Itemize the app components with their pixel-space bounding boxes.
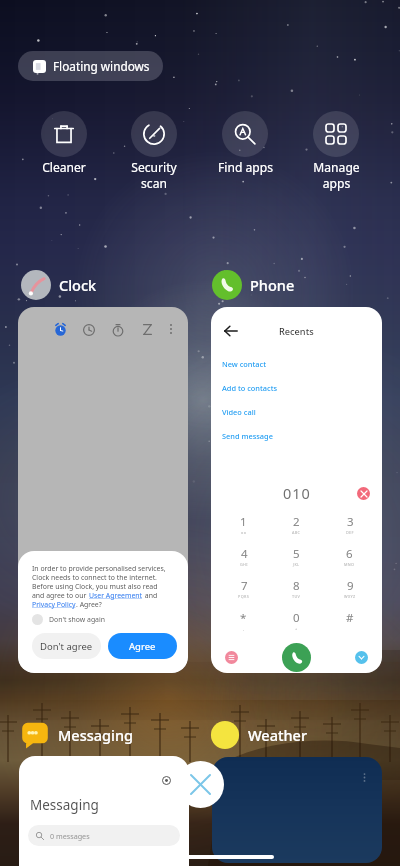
staticText: Clock	[59, 275, 97, 295]
button[interactable]: Agree	[108, 633, 177, 659]
button[interactable]: 4	[217, 546, 270, 578]
button[interactable]: Find apps	[201, 111, 289, 175]
button[interactable]: Don't show again	[32, 614, 106, 625]
button[interactable]: #	[323, 610, 376, 642]
staticText: User Agreement	[89, 591, 143, 600]
staticText: In order to provide personalised service…	[32, 564, 166, 573]
button[interactable]: 2	[270, 514, 323, 546]
staticText: *	[240, 610, 247, 626]
staticText: 010	[283, 483, 311, 503]
staticText: ABC	[292, 530, 301, 535]
staticText: MNO	[344, 562, 355, 567]
staticText: PQRS	[238, 594, 250, 599]
staticText: Find apps	[218, 159, 273, 175]
staticText: Video call	[222, 407, 256, 417]
staticText: DEF	[346, 530, 354, 535]
staticText: GHI	[240, 562, 248, 567]
button[interactable]	[212, 757, 382, 863]
button[interactable]: New contact	[211, 352, 382, 376]
staticText: 5	[293, 546, 300, 562]
staticText: Phone	[250, 275, 295, 295]
button[interactable]: Floating windows	[18, 51, 163, 81]
staticText: and agree to our	[32, 591, 89, 600]
button[interactable]: Video call	[211, 400, 382, 424]
staticText: and	[143, 591, 158, 600]
staticText: New contact	[222, 359, 267, 369]
staticText: Messaging	[58, 725, 134, 745]
button[interactable]: 0 messages	[28, 825, 180, 846]
button[interactable]: More options	[165, 323, 177, 335]
staticText: Don't agree	[40, 640, 93, 653]
button[interactable]: 9	[323, 578, 376, 610]
button[interactable]: Messaging	[19, 719, 134, 751]
staticText: Floating windows	[53, 58, 150, 74]
button[interactable]: Dialpad options	[225, 651, 238, 664]
staticText: Privacy Policy	[32, 600, 76, 609]
button[interactable]: World clock	[83, 324, 95, 336]
staticText: 0	[293, 610, 300, 626]
staticText: Clock needs to connect to the internet.	[32, 573, 157, 582]
staticText: Manage apps	[313, 159, 360, 191]
staticText: 2	[293, 514, 300, 530]
button[interactable]: 7	[217, 578, 270, 610]
button[interactable]: Messaging	[19, 756, 189, 866]
button[interactable]: 6	[323, 546, 376, 578]
staticText: 4	[241, 546, 248, 562]
staticText: Don't show again	[49, 615, 106, 624]
staticText: . Agree?	[76, 600, 102, 609]
button[interactable]: Add to contacts	[211, 376, 382, 400]
staticText: Agree	[129, 640, 156, 653]
button[interactable]: *	[217, 610, 270, 642]
staticText: 1	[240, 514, 247, 530]
button[interactable]: Delete	[357, 487, 370, 500]
button[interactable]: Weather	[209, 719, 308, 751]
button[interactable]: Call	[282, 643, 311, 672]
staticText: 0 messages	[50, 831, 90, 841]
button[interactable]: 0	[270, 610, 323, 642]
button[interactable]: 1	[217, 514, 270, 546]
button[interactable]: Alarm	[54, 323, 67, 336]
staticText: Before using Clock, you must also read	[32, 582, 158, 591]
staticText: Recents	[279, 325, 314, 338]
button[interactable]: Don't agree	[32, 633, 101, 659]
button[interactable]: Cleaner	[20, 111, 108, 175]
button[interactable]: 3	[323, 514, 376, 546]
staticText: Messaging	[30, 796, 99, 814]
button[interactable]: Hide keypad	[355, 651, 368, 664]
staticText: Send message	[222, 431, 273, 441]
staticText: 9	[347, 578, 354, 594]
button[interactable]: Recents	[211, 307, 382, 673]
staticText: +	[295, 626, 298, 631]
staticText: 6	[346, 546, 353, 562]
button[interactable]: Security scan	[110, 111, 198, 191]
staticText: Add to contacts	[222, 383, 278, 393]
staticText: oo	[241, 530, 247, 535]
button[interactable]: Send message	[211, 424, 382, 448]
staticText: Cleaner	[42, 159, 86, 175]
staticText: JKL	[293, 562, 300, 567]
button[interactable]: Manage apps	[292, 111, 380, 191]
staticText: #	[346, 610, 354, 626]
staticText: 3	[347, 514, 354, 530]
staticText: TUV	[292, 594, 301, 599]
button[interactable]: 8	[270, 578, 323, 610]
staticText: 7	[241, 578, 248, 594]
button[interactable]: Alarm	[18, 307, 188, 673]
button[interactable]: Timer	[142, 324, 153, 335]
button[interactable]: Clock	[21, 270, 97, 300]
staticText: ,	[243, 626, 245, 631]
button[interactable]: Phone	[212, 270, 295, 300]
button[interactable]: 5	[270, 546, 323, 578]
button[interactable]: Stopwatch	[112, 324, 124, 336]
button[interactable]: Close all	[177, 761, 224, 808]
staticText: WXYZ	[344, 594, 356, 599]
staticText: 8	[293, 578, 300, 594]
staticText: Security scan	[131, 159, 177, 191]
staticText: Weather	[248, 725, 308, 745]
